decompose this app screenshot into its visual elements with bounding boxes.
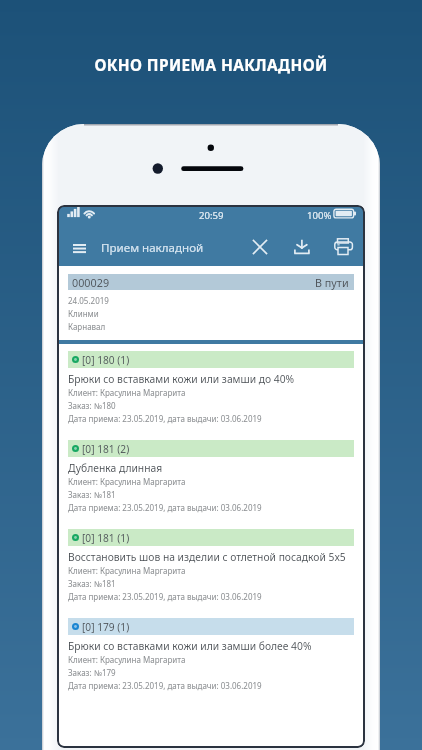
staticText: Клиент: Красулина Маргарита (68, 654, 186, 665)
staticText: Дата приема: 23.05.2019, дата выдачи: 03… (68, 413, 262, 424)
staticText: Карнавал (68, 321, 106, 332)
button[interactable]: [0] 179 (1) (59, 618, 363, 707)
button[interactable]: [0] 181 (1) (59, 529, 363, 618)
staticText: В пути (315, 275, 349, 290)
staticText: Клиент: Красулина Маргарита (68, 476, 186, 487)
button[interactable]: [0] 181 (2) (59, 440, 363, 529)
staticText: Дата приема: 23.05.2019, дата выдачи: 03… (68, 680, 262, 691)
staticText: 24.05.2019 (68, 295, 109, 306)
staticText: Дата приема: 23.05.2019, дата выдачи: 03… (68, 591, 262, 602)
staticText: [0] 181 (2) (82, 442, 130, 456)
staticText: Клинми (68, 308, 99, 319)
staticText: Брюки со вставками кожи или замши до 40% (68, 372, 295, 386)
staticText: Заказ: №181 (68, 578, 116, 589)
staticText: Дубленка длинная (68, 461, 163, 475)
staticText: ОКНО ПРИЕМА НАКЛАДНОЙ (0, 55, 422, 76)
button[interactable]: Close (246, 233, 274, 261)
staticText: Прием накладной (101, 240, 204, 256)
staticText: 100% (307, 209, 332, 222)
button[interactable]: Menu (65, 234, 93, 262)
staticText: Дата приема: 23.05.2019, дата выдачи: 03… (68, 502, 262, 513)
staticText: Брюки со вставками кожи или замши более … (68, 639, 312, 653)
button[interactable]: Download (288, 232, 316, 260)
staticText: Восстановить шов на изделии с отлетной п… (68, 550, 346, 564)
staticText: Клиент: Красулина Маргарита (68, 565, 186, 576)
staticText: [0] 180 (1) (82, 353, 130, 367)
button[interactable]: Print (329, 232, 357, 260)
staticText: 000029 (72, 275, 110, 290)
staticText: Заказ: №180 (68, 400, 116, 411)
button[interactable]: [0] 180 (1) (59, 351, 363, 440)
staticText: [0] 179 (1) (82, 620, 130, 634)
staticText: Заказ: №179 (68, 667, 116, 678)
staticText: 20:59 (199, 209, 224, 222)
staticText: Заказ: №181 (68, 489, 116, 500)
staticText: [0] 181 (1) (82, 531, 130, 545)
staticText: Клиент: Красулина Маргарита (68, 387, 186, 398)
